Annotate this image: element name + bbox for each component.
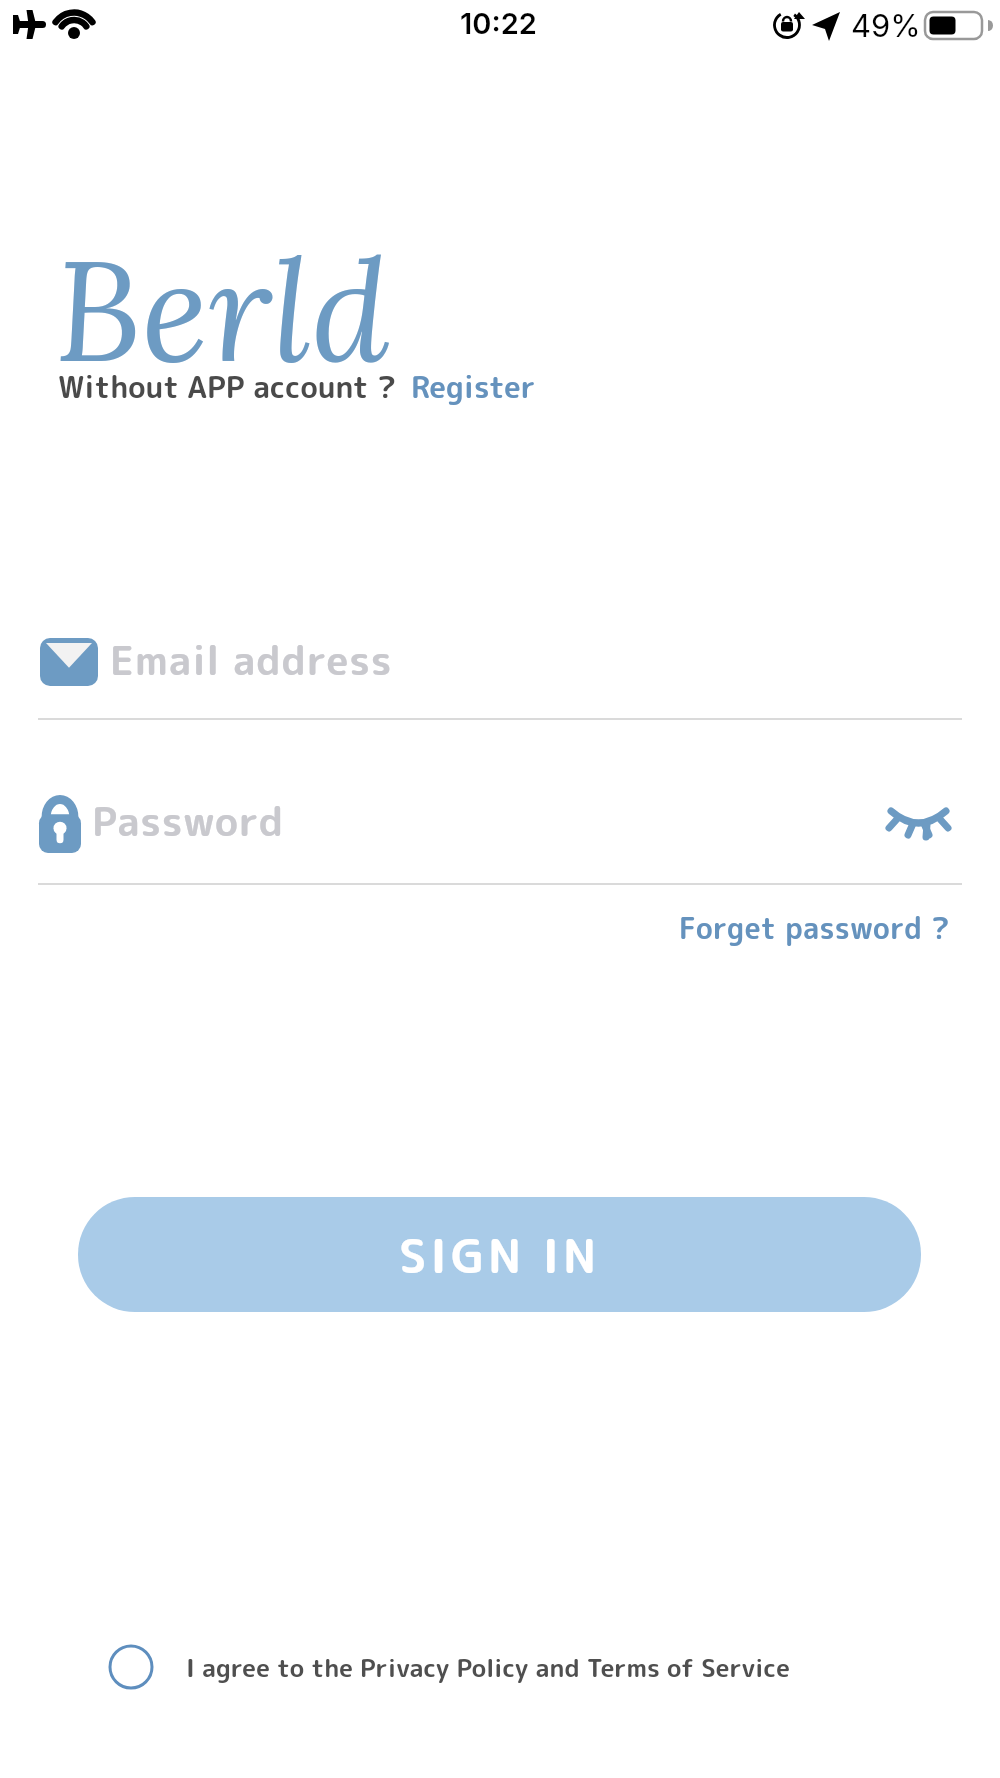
staticText: Register	[411, 366, 536, 408]
button[interactable]: SIGN IN	[78, 1197, 921, 1312]
button[interactable]: Forget password ?	[679, 908, 950, 948]
button[interactable]: Register	[411, 366, 536, 408]
staticText: Without APP account ?	[58, 366, 396, 408]
staticText: SIGN IN	[399, 1222, 601, 1288]
staticText: Email address	[110, 632, 393, 688]
staticText: Password	[92, 793, 284, 849]
staticText: I agree to the Privacy Policy and Terms …	[186, 1650, 790, 1685]
staticText: 10:22	[460, 6, 537, 41]
button[interactable]: Password	[39, 788, 948, 854]
staticText: Berld	[55, 220, 389, 399]
button[interactable]: Email address	[40, 627, 1000, 693]
staticText: 49%	[851, 7, 921, 45]
button[interactable]	[889, 801, 948, 841]
button[interactable]: I agree to the Privacy Policy and Terms …	[106, 1642, 790, 1692]
staticText: Forget password ?	[679, 908, 950, 948]
